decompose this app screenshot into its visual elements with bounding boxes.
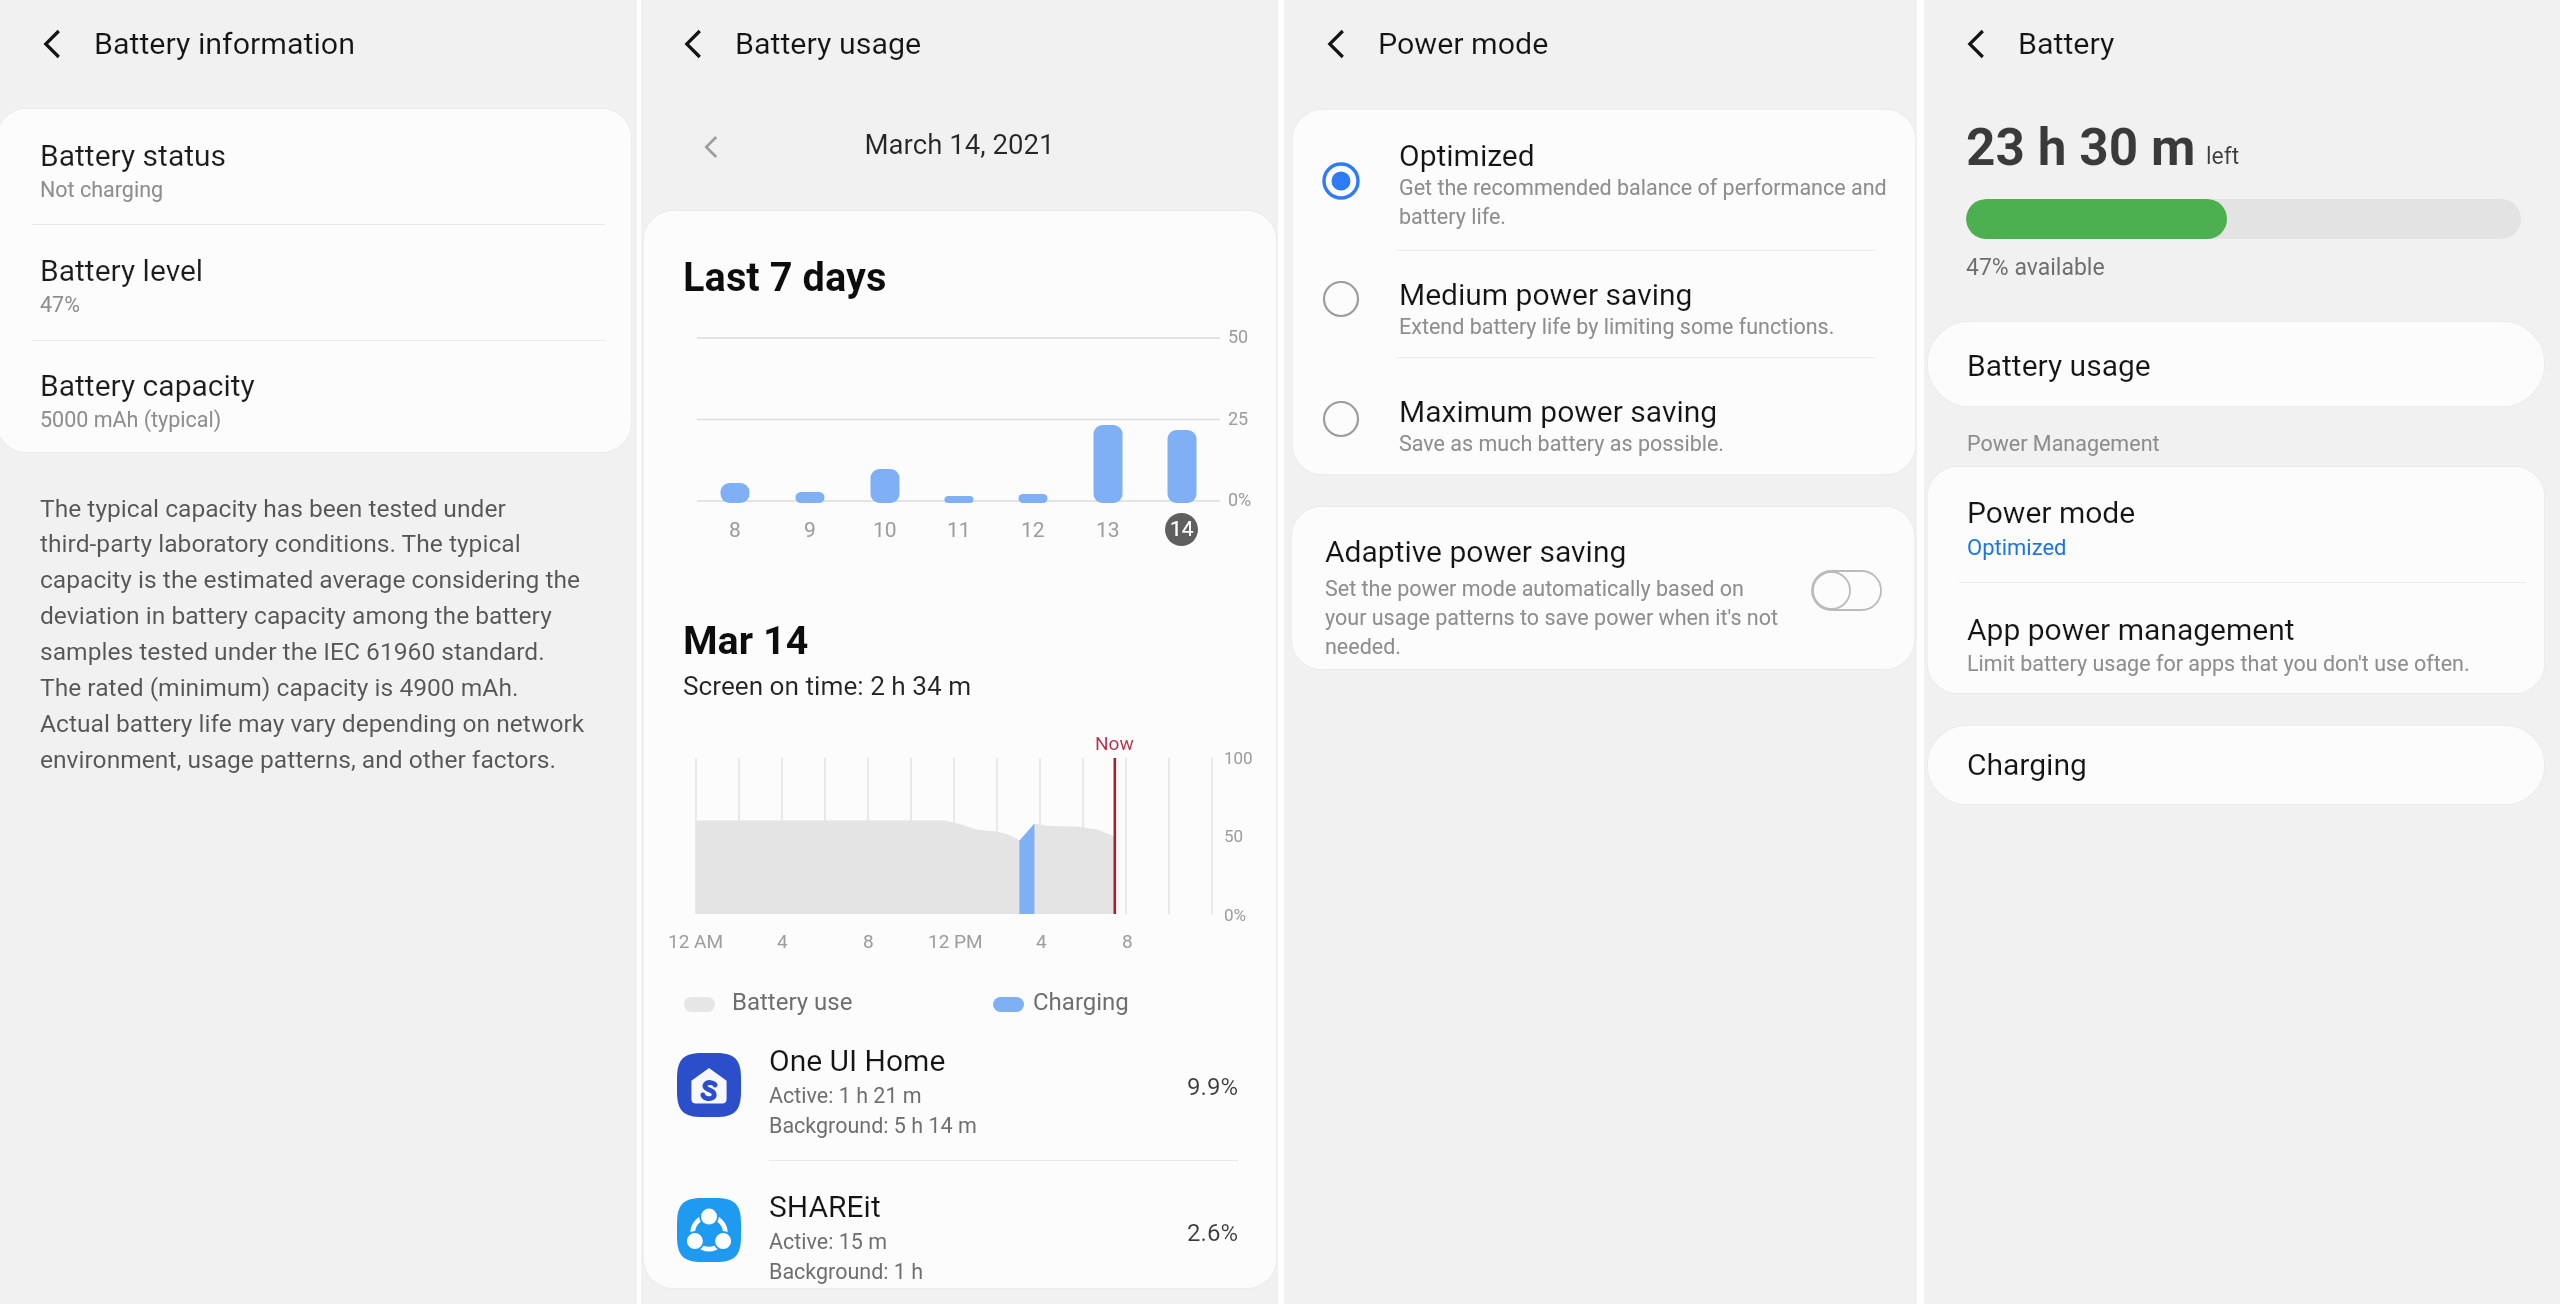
staticText: 8	[729, 518, 741, 543]
button[interactable]	[643, 1180, 1277, 1304]
button[interactable]: Previous day	[687, 123, 735, 171]
staticText: Save as much battery as possible.	[1399, 431, 1725, 456]
staticText: 14	[1170, 517, 1194, 542]
staticText: Adaptive power saving	[1325, 534, 1627, 569]
button[interactable]: Back	[1952, 20, 2000, 68]
staticText: Maximum power saving	[1399, 394, 1718, 429]
staticText: 25	[1228, 408, 1249, 429]
staticText: Not charging	[40, 177, 164, 202]
button[interactable]	[1292, 358, 1916, 475]
staticText: 47% available	[1966, 254, 2105, 281]
button[interactable]	[643, 1035, 1277, 1160]
staticText: Limit battery usage for apps that you do…	[1967, 651, 2470, 676]
staticText: 9	[804, 518, 816, 543]
staticText: Power mode	[1378, 26, 1549, 62]
button[interactable]	[1927, 725, 2545, 805]
staticText: Battery status	[40, 138, 227, 173]
staticText: 50	[1224, 826, 1244, 846]
button[interactable]	[1927, 466, 2545, 582]
staticText: Battery information	[94, 26, 355, 62]
button[interactable]	[1927, 321, 2545, 407]
staticText: 47%	[40, 292, 80, 317]
staticText: Optimized	[1967, 535, 2067, 561]
staticText: Optimized	[1399, 138, 1535, 173]
staticText: 8	[863, 930, 874, 952]
button[interactable]	[1291, 506, 1915, 670]
staticText: One UI Home	[769, 1043, 946, 1078]
staticText: 13	[1096, 518, 1120, 543]
staticText: left	[2206, 143, 2240, 170]
button[interactable]: Back	[1312, 20, 1360, 68]
staticText: Background: 1 h	[769, 1259, 924, 1284]
staticText: Battery capacity	[40, 368, 255, 403]
button[interactable]: Back	[28, 20, 76, 68]
staticText: Now	[1095, 732, 1134, 754]
staticText: Battery use	[732, 988, 853, 1016]
staticText: 11	[947, 518, 971, 543]
staticText: Set the power mode automatically based o…	[1325, 576, 1778, 659]
staticText: 9.9%	[1141, 1073, 1238, 1101]
staticText: 100	[1224, 748, 1253, 768]
staticText: 23 h 30 m	[1966, 117, 2196, 177]
staticText: App power management	[1967, 612, 2295, 647]
staticText: Battery	[2018, 26, 2115, 62]
staticText: 12 AM	[668, 930, 724, 952]
staticText: Charging	[1967, 747, 2087, 782]
button[interactable]	[1927, 583, 2545, 694]
staticText: Battery usage	[1967, 348, 2151, 383]
staticText: Medium power saving	[1399, 277, 1693, 312]
staticText: SHAREit	[769, 1189, 881, 1224]
staticText: Mar 14	[683, 617, 809, 663]
staticText: 4	[1036, 930, 1047, 952]
staticText: 0%	[1228, 489, 1252, 510]
button[interactable]	[0, 339, 632, 453]
button[interactable]	[1292, 109, 1916, 250]
staticText: Background: 5 h 14 m	[769, 1113, 977, 1138]
staticText: 10	[873, 518, 897, 543]
staticText: 5000 mAh (typical)	[40, 407, 222, 432]
staticText: Last 7 days	[683, 254, 887, 301]
staticText: 12	[1021, 518, 1045, 543]
staticText: 4	[777, 930, 788, 952]
staticText: Extend battery life by limiting some fun…	[1399, 314, 1835, 339]
staticText: Power Management	[1967, 431, 2160, 456]
staticText: Screen on time: 2 h 34 m	[683, 671, 972, 702]
staticText: March 14, 2021	[641, 128, 1278, 160]
staticText: Power mode	[1967, 495, 2136, 530]
button[interactable]	[1292, 251, 1916, 357]
button[interactable]	[0, 223, 632, 338]
staticText: Active: 15 m	[769, 1229, 888, 1254]
button[interactable]: Back	[669, 20, 717, 68]
staticText: Battery level	[40, 253, 204, 288]
staticText: 12 PM	[928, 930, 983, 952]
staticText: Battery usage	[735, 26, 922, 62]
button[interactable]	[0, 108, 632, 222]
staticText: The typical capacity has been tested und…	[40, 494, 585, 774]
staticText: 2.6%	[1141, 1219, 1238, 1247]
staticText: Charging	[1033, 988, 1129, 1016]
staticText: Active: 1 h 21 m	[769, 1083, 922, 1108]
staticText: Get the recommended balance of performan…	[1399, 175, 1887, 229]
staticText: 8	[1122, 930, 1133, 952]
staticText: 0%	[1224, 905, 1247, 925]
staticText: 50	[1228, 326, 1249, 347]
